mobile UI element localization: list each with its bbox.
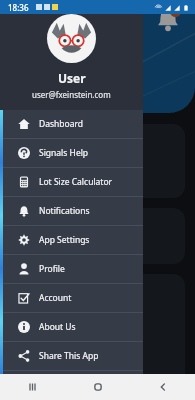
button[interactable]: Dashboard bbox=[0, 110, 143, 138]
button[interactable]: About Us bbox=[0, 313, 143, 341]
staticText: Account bbox=[39, 292, 72, 304]
staticText: Lot Size Calculator bbox=[39, 176, 113, 188]
button[interactable]: Share This App bbox=[0, 342, 143, 370]
button[interactable]: Account bbox=[0, 284, 143, 312]
staticText: Signals Help bbox=[39, 147, 89, 159]
button[interactable]: Notifications bbox=[155, 6, 181, 32]
staticText: About Us bbox=[39, 321, 76, 333]
button[interactable]: Profile bbox=[0, 255, 143, 283]
staticText: Dashboard bbox=[39, 118, 84, 130]
button[interactable]: Notifications bbox=[0, 197, 143, 225]
button[interactable]: Lot Size Calculator bbox=[0, 168, 143, 196]
button[interactable]: Long Term Signals bbox=[8, 124, 185, 198]
staticText: te ) bbox=[18, 286, 30, 297]
button[interactable]: Home bbox=[65, 374, 130, 400]
staticText: User bbox=[58, 70, 86, 86]
button[interactable]: App Settings bbox=[0, 226, 143, 254]
button[interactable]: Recents bbox=[0, 374, 65, 400]
button[interactable]: Settings bbox=[8, 208, 185, 264]
staticText: Notifications bbox=[39, 205, 90, 217]
staticText: Profile bbox=[39, 263, 65, 275]
button[interactable]: te ) bbox=[8, 274, 185, 394]
staticText: user@fxeinstein.com bbox=[32, 89, 111, 100]
button[interactable]: Signals Help bbox=[0, 139, 143, 167]
staticText: App Settings bbox=[39, 234, 90, 246]
staticText: Settings bbox=[81, 244, 112, 255]
staticText: 18:36 bbox=[8, 2, 29, 13]
staticText: Share This App bbox=[39, 350, 99, 362]
button[interactable]: Back bbox=[130, 374, 195, 400]
staticText: Long Term Signals bbox=[76, 164, 117, 185]
